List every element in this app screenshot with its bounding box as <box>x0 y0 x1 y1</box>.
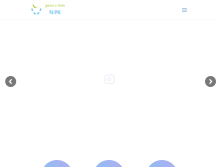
button[interactable]: Category <box>146 160 178 167</box>
button[interactable]: Menu <box>180 5 189 14</box>
staticText: NPK <box>49 8 61 16</box>
button[interactable]: Next slide <box>205 76 216 87</box>
button[interactable]: Category <box>41 160 73 167</box>
staticText: green e farm <box>45 3 65 8</box>
button[interactable]: green e farm <box>31 3 65 16</box>
button[interactable]: Category <box>93 160 125 167</box>
button[interactable]: Previous slide <box>5 76 16 87</box>
